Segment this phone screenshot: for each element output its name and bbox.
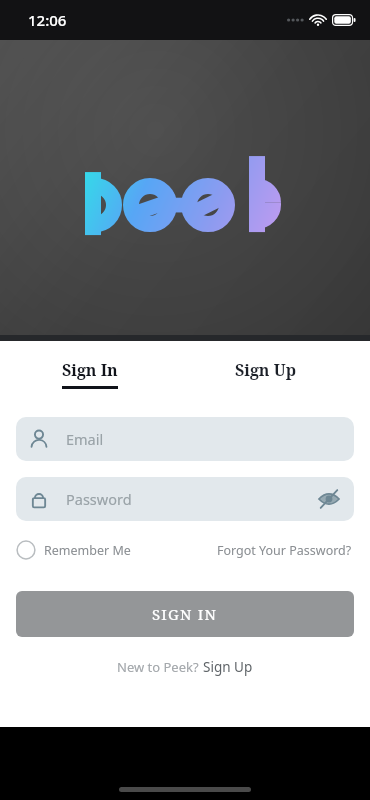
- button[interactable]: Sign Up: [229, 355, 302, 385]
- staticText: Sign In: [62, 359, 118, 381]
- button[interactable]: SIGN IN: [16, 591, 354, 637]
- button[interactable]: Sign Up: [202, 655, 254, 679]
- staticText: Sign Up: [235, 359, 296, 381]
- button[interactable]: Sign In: [56, 355, 124, 393]
- staticText: New to Peek?: [117, 658, 202, 676]
- staticText: 12:06: [28, 10, 67, 30]
- staticText: Password: [66, 489, 132, 509]
- staticText: Sign Up: [203, 658, 253, 676]
- button[interactable]: Password: [16, 477, 354, 521]
- button[interactable]: Remember Me: [16, 540, 135, 560]
- staticText: Email: [66, 429, 104, 449]
- button[interactable]: Forgot Your Password?: [215, 538, 354, 563]
- button[interactable]: Email: [16, 417, 354, 461]
- staticText: SIGN IN: [152, 604, 218, 624]
- button[interactable]: Show password: [316, 486, 342, 512]
- staticText: Forgot Your Password?: [217, 542, 352, 559]
- staticText: Remember Me: [44, 542, 131, 559]
